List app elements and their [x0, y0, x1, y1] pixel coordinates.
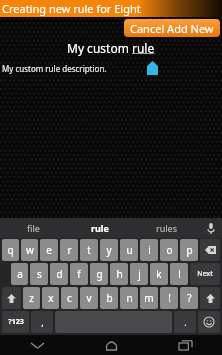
staticText: file — [27, 222, 40, 234]
button[interactable]: n — [120, 287, 138, 309]
button[interactable]: ?123 — [2, 311, 29, 333]
staticText: rule — [132, 40, 155, 56]
button[interactable]: x — [42, 287, 59, 309]
staticText: Creating new rule for Eight — [2, 1, 141, 16]
button[interactable]: r — [60, 239, 78, 261]
staticText: My custom rule description. — [2, 63, 107, 74]
staticText: t — [87, 243, 91, 257]
button[interactable]: w — [21, 239, 38, 261]
staticText: y — [106, 243, 112, 257]
staticText: r — [67, 243, 72, 257]
staticText: o — [166, 243, 173, 257]
button[interactable]: l — [170, 263, 188, 285]
staticText: z — [29, 291, 34, 305]
staticText: e — [46, 243, 52, 257]
staticText: My custom — [67, 40, 132, 56]
staticText: ?123 — [8, 317, 24, 327]
button[interactable]: t — [80, 239, 98, 261]
staticText: ? — [187, 291, 192, 305]
button[interactable]: y — [100, 239, 118, 261]
staticText: c — [67, 291, 72, 305]
button[interactable]: z — [23, 287, 40, 309]
button[interactable]: a — [11, 263, 28, 285]
staticText: . — [184, 316, 187, 328]
button[interactable]: u — [120, 239, 138, 261]
button[interactable]: . — [174, 311, 196, 333]
button[interactable]: rules — [133, 218, 200, 238]
button[interactable]: o — [160, 239, 178, 261]
staticText: l — [178, 267, 181, 281]
staticText: u — [126, 243, 133, 257]
staticText: s — [37, 267, 42, 281]
button[interactable]: g — [90, 263, 108, 285]
button[interactable]: Cancel Add New — [124, 19, 220, 37]
button[interactable]: Home — [74, 335, 148, 355]
button[interactable] — [2, 287, 21, 309]
button[interactable]: s — [30, 263, 48, 285]
staticText: h — [116, 267, 123, 281]
button[interactable]: Back — [0, 335, 74, 355]
button[interactable]: i — [140, 239, 158, 261]
button[interactable]: b — [100, 287, 118, 309]
button[interactable]: Recent apps — [148, 335, 222, 355]
staticText: , — [41, 316, 44, 328]
button[interactable]: j — [130, 263, 148, 285]
staticText: b — [106, 291, 113, 305]
button[interactable]: v — [80, 287, 98, 309]
button[interactable]: Voice input — [200, 218, 222, 238]
button[interactable]: file — [0, 218, 66, 238]
staticText: f — [77, 267, 81, 281]
staticText: Cancel Add New — [130, 21, 214, 36]
staticText: p — [186, 243, 193, 257]
button[interactable] — [200, 239, 220, 261]
staticText: g — [96, 267, 103, 281]
staticText: a — [17, 267, 23, 281]
button[interactable] — [198, 311, 220, 333]
staticText: rule — [91, 222, 109, 234]
button[interactable]: p — [180, 239, 198, 261]
button[interactable]: c — [61, 287, 78, 309]
button[interactable] — [200, 287, 220, 309]
button[interactable]: , — [31, 311, 53, 333]
staticText: rules — [156, 222, 177, 234]
button[interactable]: ? — [180, 287, 198, 309]
button[interactable]: ! — [160, 287, 178, 309]
staticText: q — [7, 243, 14, 257]
staticText: d — [56, 267, 63, 281]
button[interactable]: rule — [66, 218, 133, 238]
staticText: j — [138, 267, 141, 281]
button[interactable]: m — [140, 287, 158, 309]
button[interactable]: e — [40, 239, 58, 261]
button[interactable]: Next — [190, 263, 220, 285]
button[interactable]: d — [50, 263, 68, 285]
staticText: v — [86, 291, 92, 305]
staticText: Next — [197, 269, 213, 279]
button[interactable]: h — [110, 263, 128, 285]
staticText: k — [156, 267, 162, 281]
button[interactable]: q — [2, 239, 19, 261]
button[interactable]: f — [70, 263, 88, 285]
staticText: m — [144, 291, 154, 305]
staticText: ! — [168, 291, 171, 305]
staticText: i — [148, 243, 151, 257]
staticText: w — [26, 243, 34, 257]
button[interactable]: k — [150, 263, 168, 285]
staticText: x — [48, 291, 54, 305]
staticText: n — [126, 291, 133, 305]
